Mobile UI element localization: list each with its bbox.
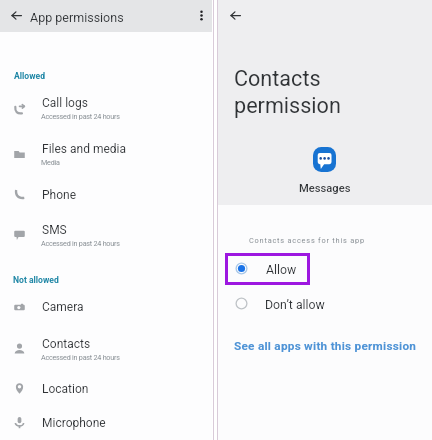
staticText: Accessed in past 24 hours	[41, 239, 120, 247]
staticText: Allow	[266, 263, 297, 277]
staticText: See all apps with this permission	[234, 339, 417, 353]
staticText: Accessed in past 24 hours	[41, 353, 120, 361]
button[interactable]: More options	[190, 4, 212, 26]
button[interactable]	[0, 294, 212, 322]
button[interactable]	[231, 336, 417, 358]
button[interactable]: Back	[224, 4, 246, 26]
staticText: SMS	[42, 223, 67, 237]
staticText: Contacts access for this app	[249, 236, 365, 245]
staticText: Files and media	[42, 142, 126, 156]
staticText: Media	[41, 158, 60, 166]
staticText: permission	[234, 93, 341, 118]
staticText: Contacts	[234, 66, 321, 91]
staticText: App permissions	[30, 10, 124, 25]
button[interactable]: Back	[5, 4, 27, 26]
staticText: Contacts	[42, 337, 91, 351]
button[interactable]	[0, 89, 212, 125]
staticText: Not allowed	[13, 275, 59, 285]
staticText: Call logs	[42, 96, 88, 110]
staticText: Camera	[42, 300, 84, 314]
staticText: Messages	[299, 182, 351, 195]
staticText: Location	[42, 382, 89, 396]
staticText: Microphone	[42, 416, 106, 430]
staticText: Phone	[42, 188, 77, 202]
button[interactable]	[0, 181, 212, 209]
button[interactable]	[0, 136, 212, 172]
button[interactable]	[0, 330, 212, 366]
button[interactable]	[225, 253, 310, 285]
staticText: Accessed in past 24 hours	[41, 112, 120, 120]
button[interactable]	[0, 217, 212, 253]
button[interactable]	[0, 375, 212, 403]
button[interactable]	[225, 289, 345, 318]
button[interactable]	[0, 410, 212, 438]
staticText: Allowed	[14, 71, 45, 81]
staticText: Don’t allow	[265, 298, 325, 312]
